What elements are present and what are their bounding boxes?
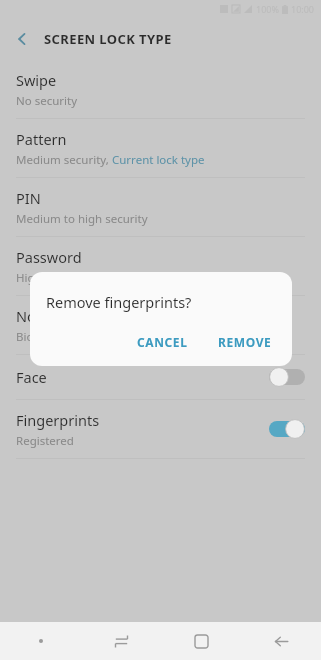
button[interactable]: Pattern: [0, 119, 321, 177]
button[interactable]: Hide keyboard: [0, 622, 81, 660]
button[interactable]: Password: [0, 237, 321, 295]
staticText: Registered: [16, 433, 74, 449]
button[interactable]: CANCEL: [125, 326, 200, 358]
staticText: Face: [16, 367, 47, 387]
button[interactable]: Toggle on: [269, 419, 305, 439]
staticText: Medium to high security: [16, 211, 148, 227]
button[interactable]: None: [0, 296, 321, 354]
staticText: Password: [16, 247, 82, 267]
button[interactable]: REMOVE: [206, 326, 284, 358]
staticText: Medium security,: [16, 152, 112, 168]
staticText: No security: [16, 93, 78, 109]
staticText: PIN: [16, 188, 41, 208]
button[interactable]: Face: [0, 355, 321, 399]
staticText: Biometrics only: [16, 329, 100, 345]
staticText: Current lock type: [112, 152, 205, 168]
staticText: Fingerprints: [16, 410, 100, 430]
staticText: SCREEN LOCK TYPE: [44, 30, 172, 48]
staticText: Swipe: [16, 70, 57, 90]
staticText: Remove fingerprints?: [46, 292, 192, 312]
button[interactable]: Recents: [81, 622, 161, 660]
staticText: None: [16, 306, 53, 326]
button[interactable]: Fingerprints: [0, 400, 321, 458]
staticText: 10:00: [291, 3, 315, 15]
staticText: 100%: [256, 3, 279, 15]
staticText: CANCEL: [137, 334, 188, 350]
button[interactable]: Swipe: [0, 60, 321, 118]
button[interactable]: Toggle off: [269, 367, 305, 387]
staticText: REMOVE: [218, 334, 272, 350]
button[interactable]: Back: [241, 622, 321, 660]
button[interactable]: PIN: [0, 178, 321, 236]
button[interactable]: Home: [161, 622, 241, 660]
staticText: Pattern: [16, 129, 67, 149]
button[interactable]: Back: [0, 18, 44, 60]
staticText: High security: [16, 270, 88, 286]
